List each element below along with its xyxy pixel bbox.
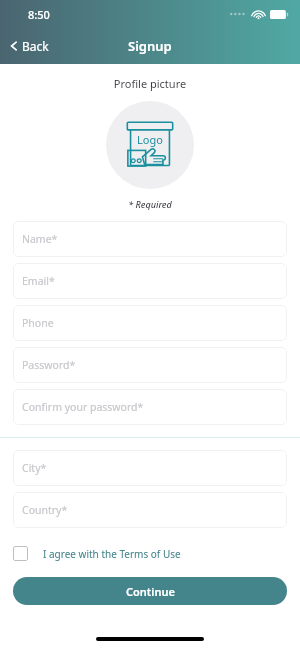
staticText: Email* xyxy=(22,274,55,288)
button[interactable]: City* xyxy=(13,450,287,486)
button[interactable]: Continue xyxy=(13,577,287,605)
staticText: Logo xyxy=(137,132,163,147)
button[interactable]: Password* xyxy=(13,347,287,383)
staticText: Country* xyxy=(22,503,68,517)
button[interactable]: Confirm your password* xyxy=(13,389,287,425)
button[interactable]: Email* xyxy=(13,263,287,299)
staticText: Confirm your password* xyxy=(22,400,144,414)
button[interactable]: Country* xyxy=(13,492,287,528)
staticText: Back xyxy=(22,38,49,54)
button[interactable]: Choose profile picture xyxy=(106,101,194,189)
staticText: Continue xyxy=(126,584,175,599)
button[interactable]: Back xyxy=(8,38,49,54)
staticText: Profile picture xyxy=(0,76,300,91)
button[interactable]: I agree with the Terms of Use xyxy=(13,546,287,561)
staticText: I agree with the Terms of Use xyxy=(43,547,181,561)
button[interactable]: Phone xyxy=(13,305,287,341)
staticText: Phone xyxy=(22,316,54,330)
staticText: Password* xyxy=(22,358,76,372)
staticText: Signup xyxy=(128,37,172,55)
staticText: Name* xyxy=(22,232,58,246)
staticText: 8:50 xyxy=(28,7,50,22)
staticText: City* xyxy=(22,461,47,475)
button[interactable]: Name* xyxy=(13,221,287,257)
staticText: * Required xyxy=(0,198,300,210)
